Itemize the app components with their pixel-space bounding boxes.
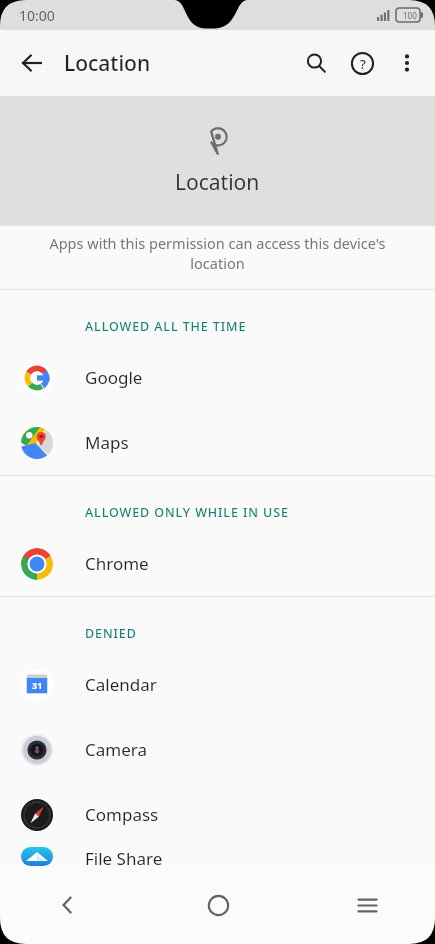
staticText: Google xyxy=(85,366,143,389)
button[interactable]: Back xyxy=(42,879,94,931)
staticText: Chrome xyxy=(85,552,149,575)
button[interactable]: Chrome xyxy=(0,531,435,596)
staticText: DENIED xyxy=(85,625,137,642)
button[interactable]: Help xyxy=(339,40,385,86)
button[interactable]: Google xyxy=(0,345,435,410)
button[interactable]: More options xyxy=(385,41,429,85)
staticText: 31 xyxy=(32,679,43,691)
button[interactable]: File Share xyxy=(0,847,435,866)
staticText: Location xyxy=(64,49,293,78)
staticText: ALLOWED ALL THE TIME xyxy=(85,318,247,335)
button[interactable]: Search xyxy=(293,40,339,86)
staticText: File Share xyxy=(85,847,163,866)
staticText: Location xyxy=(175,168,260,197)
button[interactable]: Recent apps xyxy=(341,879,393,931)
button[interactable]: Home xyxy=(192,879,244,931)
staticText: Apps with this permission can access thi… xyxy=(30,233,405,274)
button[interactable]: Maps xyxy=(0,410,435,475)
staticText: Maps xyxy=(85,431,129,454)
staticText: ? xyxy=(360,55,366,73)
button[interactable]: 31 xyxy=(0,652,435,717)
staticText: Camera xyxy=(85,738,147,761)
button[interactable]: Back xyxy=(8,39,56,87)
button[interactable]: Camera xyxy=(0,717,435,782)
staticText: Compass xyxy=(85,803,159,826)
staticText: 100 xyxy=(403,10,417,21)
staticText: 10:00 xyxy=(19,6,55,25)
button[interactable]: Compass xyxy=(0,782,435,847)
staticText: Calendar xyxy=(85,673,157,696)
staticText: ALLOWED ONLY WHILE IN USE xyxy=(85,504,289,521)
